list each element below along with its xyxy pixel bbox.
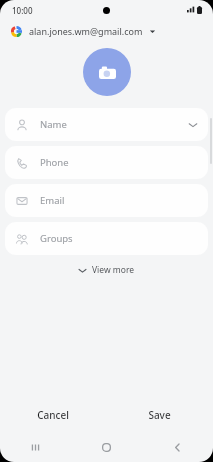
staticText: 10:00 [12, 5, 33, 16]
button[interactable]: Save [106, 398, 213, 432]
button[interactable]: View more [68, 260, 145, 280]
staticText: Phone [40, 156, 69, 169]
button[interactable]: Email [5, 184, 208, 217]
staticText: Groups [40, 232, 73, 245]
button[interactable]: Name [5, 108, 208, 141]
button[interactable]: Home [71, 432, 142, 462]
staticText: Save [148, 408, 171, 422]
button[interactable]: Back [142, 432, 213, 462]
staticText: Name [40, 118, 67, 131]
button[interactable]: Recents [0, 432, 71, 462]
button[interactable]: Groups [5, 222, 208, 255]
button[interactable]: Phone [5, 146, 208, 179]
staticText: Email [40, 194, 65, 207]
staticText: View more [92, 264, 135, 276]
button[interactable]: Cancel [0, 398, 106, 432]
button[interactable]: Add contact photo [83, 48, 131, 96]
staticText: Cancel [37, 408, 69, 422]
button[interactable]: alan.jones.wm@gmail.com [0, 20, 213, 42]
staticText: alan.jones.wm@gmail.com [29, 25, 143, 37]
